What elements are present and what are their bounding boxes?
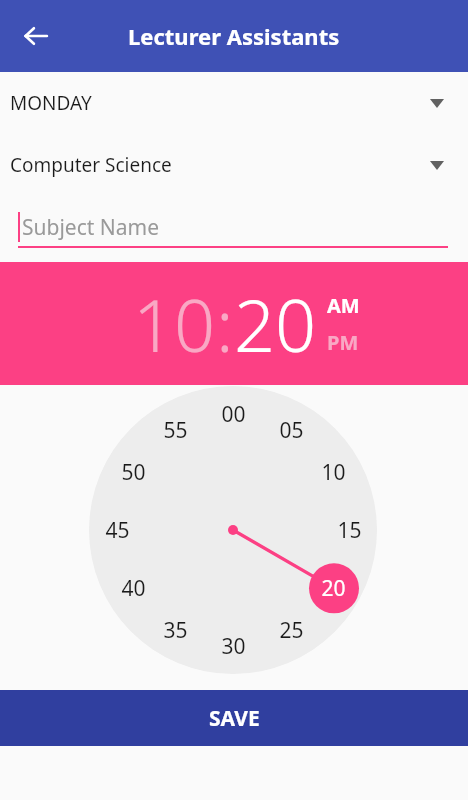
button[interactable]: Computer Science: [0, 134, 468, 196]
staticText: Computer Science: [10, 152, 172, 178]
staticText: 45: [105, 516, 130, 545]
staticText: 10: [321, 458, 346, 487]
staticText: 20: [234, 275, 317, 373]
staticText: Subject Name: [22, 213, 160, 242]
staticText: 10: [133, 275, 216, 373]
button[interactable]: SAVE: [0, 690, 468, 746]
staticText: 55: [163, 416, 188, 445]
staticText: 20: [321, 574, 346, 603]
staticText: 25: [279, 616, 304, 645]
staticText: 40: [121, 574, 146, 603]
staticText: SAVE: [209, 704, 260, 733]
button[interactable]: AM: [327, 292, 360, 319]
staticText: Lecturer Assistants: [128, 21, 340, 51]
staticText: PM: [327, 329, 359, 356]
staticText: 50: [121, 458, 146, 487]
staticText: 15: [337, 516, 362, 545]
button[interactable]: Subject Name: [0, 196, 468, 262]
staticText: :: [216, 275, 234, 373]
button[interactable]: 10: [133, 275, 216, 373]
staticText: 30: [221, 632, 246, 661]
button[interactable]: PM: [327, 329, 359, 356]
staticText: 35: [163, 616, 188, 645]
staticText: 05: [279, 416, 304, 445]
staticText: AM: [327, 292, 360, 319]
staticText: MONDAY: [10, 90, 92, 116]
button[interactable]: 20: [234, 275, 317, 373]
button[interactable]: MONDAY: [0, 72, 468, 134]
button[interactable]: [89, 386, 377, 674]
button[interactable]: Back: [12, 12, 60, 60]
staticText: 00: [221, 400, 246, 429]
